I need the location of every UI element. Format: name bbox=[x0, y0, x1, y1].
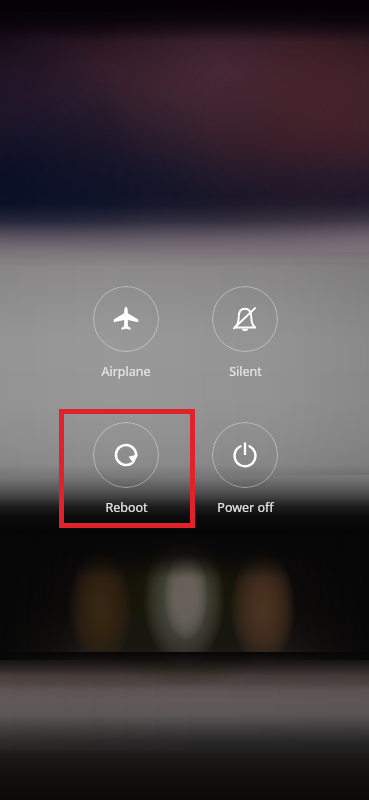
button[interactable]: Airplane bbox=[82, 286, 170, 380]
button[interactable]: Power off bbox=[201, 422, 289, 516]
staticText: Airplane bbox=[101, 363, 151, 380]
staticText: Reboot bbox=[105, 499, 148, 516]
staticText: Power off bbox=[217, 499, 274, 516]
staticText: Silent bbox=[229, 363, 262, 380]
button[interactable]: Silent bbox=[201, 286, 289, 380]
button[interactable]: Reboot bbox=[82, 422, 170, 516]
